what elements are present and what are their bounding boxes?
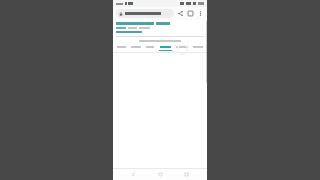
button[interactable]: Home bbox=[155, 169, 166, 180]
button[interactable] bbox=[129, 46, 143, 51]
button[interactable]: Address bar bbox=[116, 9, 174, 18]
button[interactable] bbox=[144, 46, 156, 51]
button[interactable] bbox=[174, 46, 190, 51]
button[interactable] bbox=[115, 46, 128, 51]
button[interactable]: Tabs bbox=[187, 10, 194, 17]
button[interactable]: Back bbox=[128, 169, 139, 180]
button[interactable] bbox=[158, 46, 173, 51]
button[interactable]: Share bbox=[177, 10, 184, 17]
button[interactable] bbox=[191, 46, 205, 51]
button[interactable]: Recent apps bbox=[181, 169, 192, 180]
button[interactable]: More options bbox=[197, 10, 204, 17]
